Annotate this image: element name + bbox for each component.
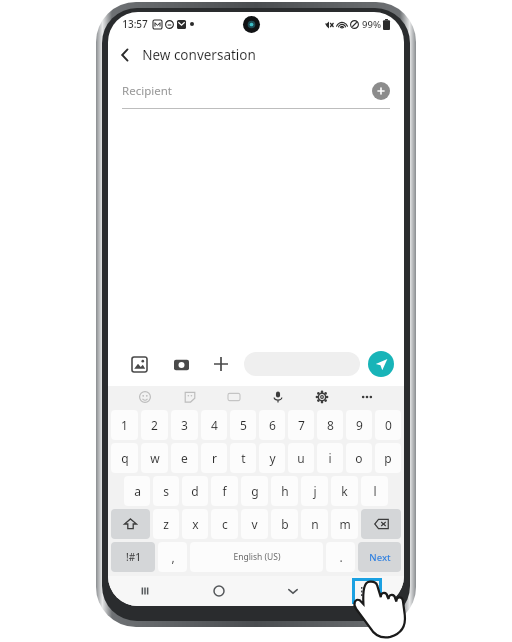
button[interactable]: n bbox=[301, 509, 328, 539]
staticText: 13:57 bbox=[122, 17, 148, 31]
button[interactable]: k bbox=[331, 476, 358, 506]
button[interactable]: Stickers bbox=[180, 387, 200, 407]
button[interactable]: d bbox=[182, 476, 208, 506]
button[interactable]: Recipient bbox=[122, 74, 390, 108]
button[interactable]: q bbox=[111, 443, 138, 473]
button[interactable]: f bbox=[211, 476, 238, 506]
button[interactable]: 0 bbox=[375, 410, 401, 440]
button[interactable]: g bbox=[241, 476, 268, 506]
staticText: f bbox=[222, 483, 227, 499]
button[interactable]: u bbox=[288, 443, 314, 473]
button[interactable]: w bbox=[141, 443, 168, 473]
staticText: 1 bbox=[121, 417, 128, 433]
button[interactable]: 9 bbox=[346, 410, 372, 440]
staticText: English (US) bbox=[233, 551, 281, 563]
staticText: y bbox=[269, 450, 276, 466]
staticText: g bbox=[251, 483, 259, 499]
button[interactable]: Switch keyboard bbox=[352, 578, 382, 604]
button[interactable]: Emoji bbox=[135, 387, 155, 407]
button[interactable]: . bbox=[326, 542, 355, 572]
staticText: Next bbox=[369, 551, 391, 564]
button[interactable]: h bbox=[271, 476, 298, 506]
button[interactable]: v bbox=[241, 509, 268, 539]
button[interactable]: 1 bbox=[111, 410, 138, 440]
staticText: 0 bbox=[385, 417, 392, 433]
button[interactable]: x bbox=[182, 509, 208, 539]
staticText: v bbox=[251, 516, 258, 532]
staticText: h bbox=[281, 483, 289, 499]
button[interactable]: Send bbox=[368, 351, 394, 377]
button[interactable]: Shift bbox=[111, 509, 150, 539]
button[interactable]: s bbox=[153, 476, 179, 506]
staticText: New conversation bbox=[142, 46, 256, 64]
staticText: q bbox=[121, 450, 129, 466]
staticText: m bbox=[339, 516, 351, 532]
staticText: l bbox=[373, 483, 377, 499]
staticText: 3 bbox=[181, 417, 188, 433]
button[interactable]: Voice input bbox=[268, 387, 288, 407]
button[interactable]: Hide keyboard bbox=[256, 576, 330, 606]
button[interactable]: Gallery bbox=[126, 351, 152, 377]
button[interactable]: Next bbox=[358, 542, 401, 572]
button[interactable]: More bbox=[357, 387, 377, 407]
staticText: 9 bbox=[356, 417, 363, 433]
staticText: p bbox=[384, 450, 392, 466]
staticText: i bbox=[328, 450, 332, 466]
button[interactable]: !#1 bbox=[111, 542, 155, 572]
button[interactable]: Recents bbox=[108, 576, 182, 606]
button[interactable]: More options bbox=[208, 351, 234, 377]
button[interactable]: e bbox=[171, 443, 198, 473]
staticText: Recipient bbox=[122, 83, 172, 99]
button[interactable]: 5 bbox=[230, 410, 256, 440]
button[interactable]: Backspace bbox=[361, 509, 401, 539]
button[interactable]: o bbox=[346, 443, 372, 473]
staticText: o bbox=[355, 450, 363, 466]
button[interactable]: Settings bbox=[312, 387, 332, 407]
button[interactable]: r bbox=[201, 443, 227, 473]
button[interactable]: 2 bbox=[141, 410, 168, 440]
button[interactable]: y bbox=[259, 443, 285, 473]
button[interactable]: p bbox=[375, 443, 401, 473]
button[interactable]: i bbox=[317, 443, 343, 473]
button[interactable] bbox=[244, 352, 360, 376]
button[interactable]: Home bbox=[182, 576, 256, 606]
staticText: !#1 bbox=[126, 550, 141, 564]
button[interactable]: , bbox=[158, 542, 187, 572]
button[interactable]: t bbox=[230, 443, 256, 473]
button[interactable]: a bbox=[124, 476, 150, 506]
button[interactable]: m bbox=[331, 509, 358, 539]
button[interactable]: 6 bbox=[259, 410, 285, 440]
staticText: r bbox=[212, 450, 217, 466]
button[interactable]: c bbox=[211, 509, 238, 539]
button[interactable]: 8 bbox=[317, 410, 343, 440]
button[interactable]: z bbox=[153, 509, 179, 539]
staticText: . bbox=[339, 549, 343, 565]
button[interactable]: Add recipient bbox=[372, 82, 390, 100]
staticText: w bbox=[150, 450, 160, 466]
staticText: t bbox=[241, 450, 246, 466]
button[interactable]: b bbox=[271, 509, 298, 539]
staticText: e bbox=[181, 450, 188, 466]
staticText: c bbox=[222, 516, 228, 532]
staticText: , bbox=[171, 549, 175, 565]
button[interactable]: 7 bbox=[288, 410, 314, 440]
button[interactable]: Back bbox=[108, 38, 142, 72]
staticText: n bbox=[311, 516, 319, 532]
button[interactable]: l bbox=[361, 476, 388, 506]
button[interactable]: English (US) bbox=[190, 542, 323, 572]
staticText: 99% bbox=[362, 18, 381, 31]
staticText: 5 bbox=[240, 417, 247, 433]
staticText: d bbox=[191, 483, 199, 499]
button[interactable]: j bbox=[301, 476, 328, 506]
staticText: 4 bbox=[211, 417, 218, 433]
staticText: z bbox=[163, 516, 169, 532]
staticText: 7 bbox=[298, 417, 305, 433]
button[interactable]: 4 bbox=[201, 410, 227, 440]
staticText: s bbox=[163, 483, 169, 499]
staticText: x bbox=[192, 516, 199, 532]
staticText: 6 bbox=[269, 417, 276, 433]
button[interactable]: 3 bbox=[171, 410, 198, 440]
staticText: 8 bbox=[327, 417, 334, 433]
button[interactable]: GIF bbox=[224, 387, 244, 407]
button[interactable]: Camera bbox=[168, 351, 194, 377]
